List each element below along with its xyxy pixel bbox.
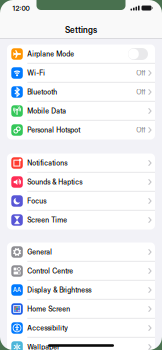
staticText: Bluetooth <box>27 88 57 96</box>
staticText: Off <box>136 126 145 134</box>
staticText: Airplane Mode <box>27 50 74 58</box>
staticText: Settings <box>65 25 97 35</box>
button[interactable]: Home Screen <box>7 299 155 318</box>
staticText: Personal Hotspot <box>27 126 80 134</box>
staticText: Display & Brightness <box>27 286 91 294</box>
button[interactable]: Control Centre <box>7 261 155 280</box>
button[interactable]: Sounds & Haptics <box>7 172 155 191</box>
button[interactable]: Screen Time <box>7 210 155 229</box>
button[interactable]: Wallpaper <box>7 337 155 350</box>
staticText: 12:00 <box>12 4 29 12</box>
button[interactable]: Notifications <box>7 153 155 172</box>
staticText: Home Screen <box>27 305 70 313</box>
staticText: Wi-Fi <box>27 69 45 77</box>
staticText: Sounds & Haptics <box>27 178 82 186</box>
button[interactable]: Airplane Mode <box>7 44 155 63</box>
staticText: Off <box>136 88 145 96</box>
staticText: Screen Time <box>27 216 67 224</box>
button[interactable]: Personal Hotspot <box>7 120 155 139</box>
staticText: Control Centre <box>27 267 73 275</box>
button[interactable]: Wi-Fi <box>7 63 155 82</box>
staticText: Off <box>136 69 145 77</box>
button[interactable]: Mobile Data <box>7 101 155 120</box>
staticText: Wallpaper <box>27 343 59 350</box>
button[interactable]: Accessibility <box>7 318 155 337</box>
button[interactable]: General <box>7 242 155 261</box>
button[interactable]: AA <box>7 280 155 299</box>
button[interactable]: Focus <box>7 191 155 210</box>
staticText: Focus <box>27 197 46 205</box>
staticText: General <box>27 248 52 256</box>
staticText: Notifications <box>27 159 67 167</box>
staticText: AA <box>13 287 21 293</box>
staticText: Accessibility <box>27 324 68 332</box>
staticText: Mobile Data <box>27 107 66 115</box>
button[interactable]: Bluetooth <box>7 82 155 101</box>
